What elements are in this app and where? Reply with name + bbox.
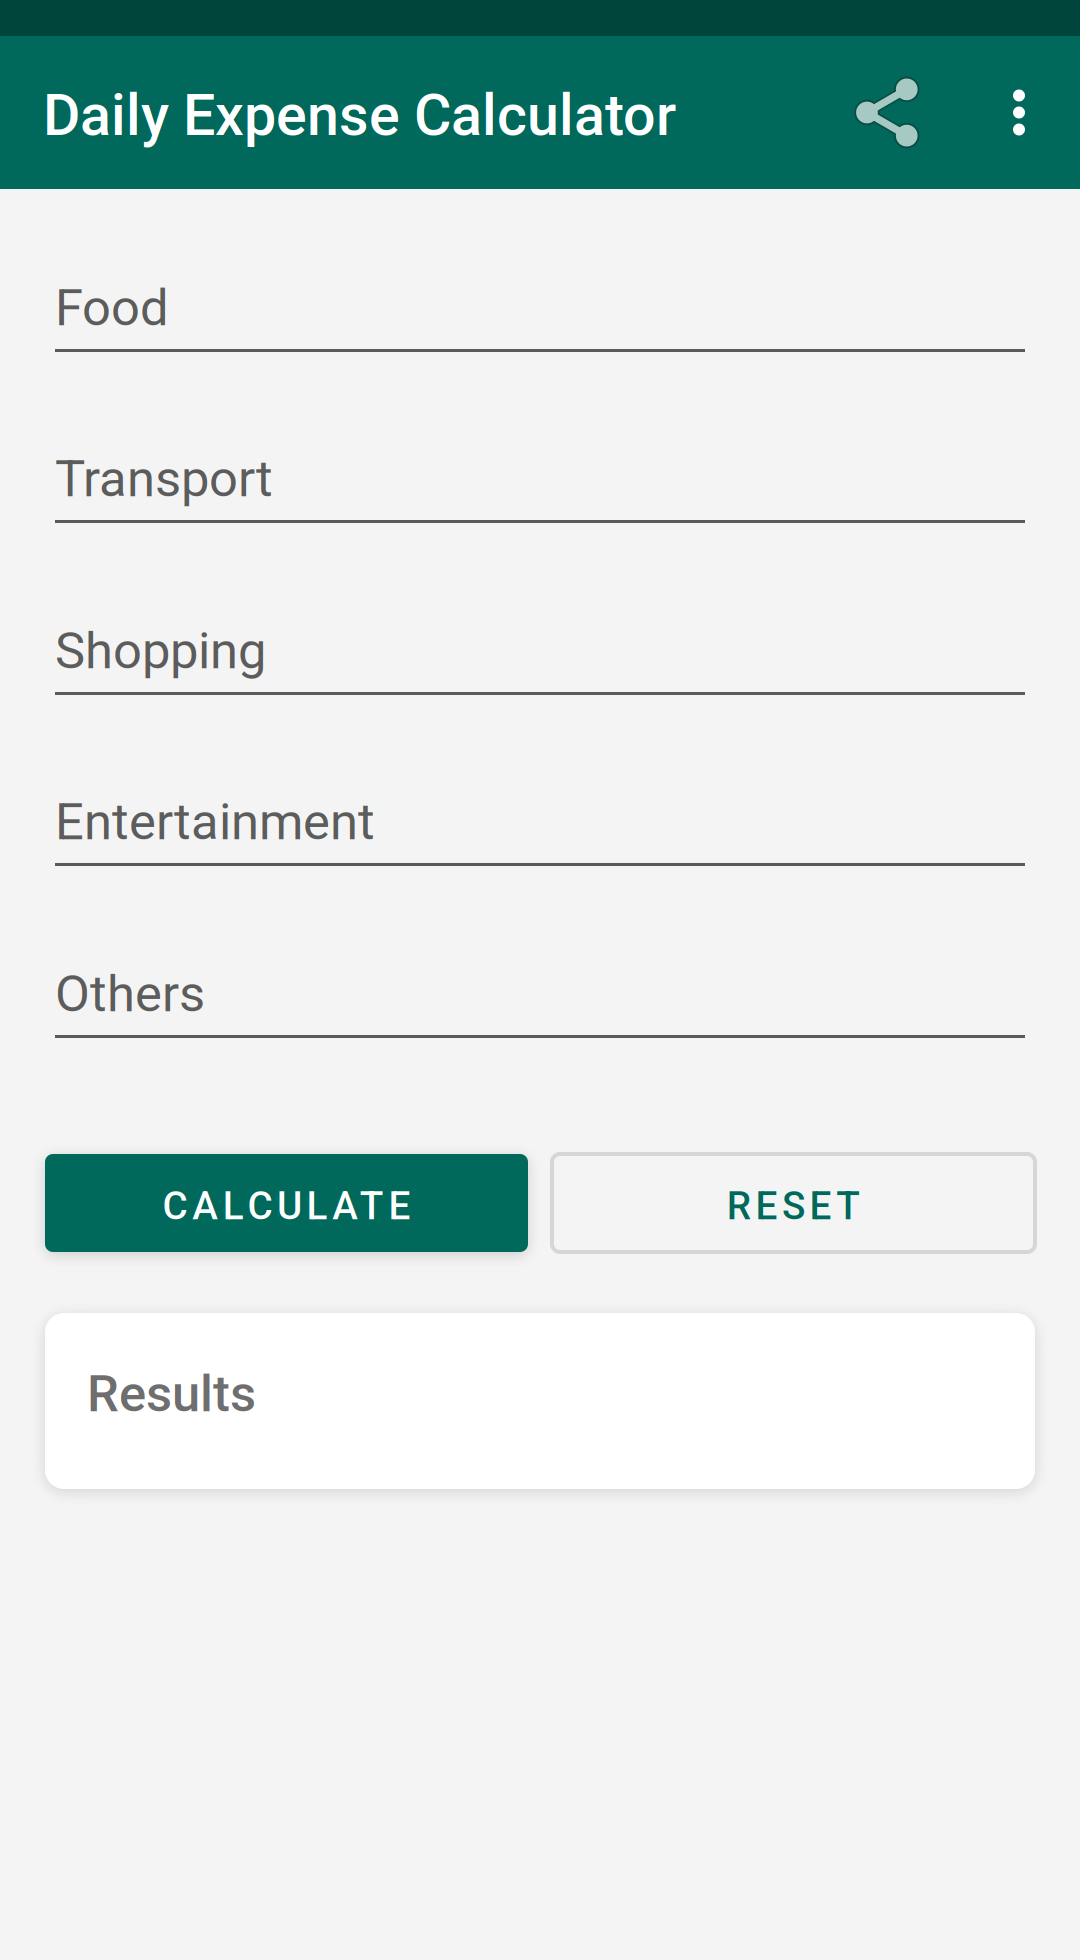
staticText: CALCULATE [163,1183,410,1229]
staticText: Food [55,278,169,338]
staticText: Daily Expense Calculator [43,82,676,149]
staticText: Others [55,964,205,1024]
button[interactable]: Share [832,36,942,189]
button[interactable]: RESET [552,1154,1035,1252]
button[interactable]: Food [55,291,1025,352]
button[interactable]: Transport [55,462,1025,523]
button[interactable]: More options [976,36,1062,189]
button[interactable]: Entertainment [55,805,1025,866]
staticText: Shopping [55,621,266,681]
staticText: Transport [55,449,273,509]
button[interactable]: Shopping [55,634,1025,695]
staticText: Results [87,1364,256,1424]
button[interactable]: CALCULATE [45,1154,528,1252]
staticText: RESET [727,1183,860,1229]
button[interactable]: Others [55,977,1025,1038]
staticText: Entertainment [55,792,375,852]
